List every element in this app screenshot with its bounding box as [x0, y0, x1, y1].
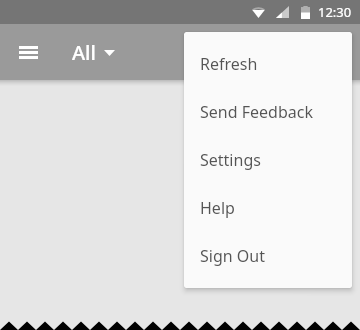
button[interactable]: Open navigation drawer: [8, 32, 48, 72]
button[interactable]: Settings: [184, 136, 352, 184]
staticText: Sign Out: [200, 245, 265, 267]
button[interactable]: All: [72, 35, 115, 70]
staticText: Settings: [200, 149, 261, 171]
staticText: 12:30: [318, 3, 352, 21]
staticText: Refresh: [200, 53, 258, 75]
staticText: Send Feedback: [200, 101, 313, 123]
button[interactable]: Sign Out: [184, 232, 352, 280]
button[interactable]: Refresh: [184, 40, 352, 88]
button[interactable]: Send Feedback: [184, 88, 352, 136]
button[interactable]: Help: [184, 184, 352, 232]
staticText: All: [72, 39, 96, 66]
staticText: Help: [200, 197, 235, 219]
